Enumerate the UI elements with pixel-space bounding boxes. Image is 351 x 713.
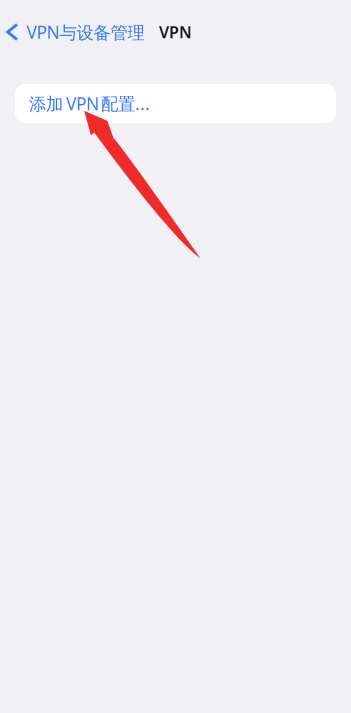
button[interactable]: VPN与设备管理 (0, 14, 144, 49)
staticText: VPN与设备管理 (26, 20, 144, 43)
staticText: 添加 VPN 配置... (29, 92, 150, 115)
staticText: VPN (159, 21, 192, 43)
button[interactable]: 添加 VPN 配置... (15, 84, 336, 123)
